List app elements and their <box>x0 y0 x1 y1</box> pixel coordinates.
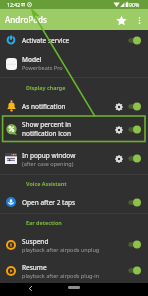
button[interactable]: Toggle <box>128 154 141 163</box>
button[interactable]: Toggle <box>128 240 141 249</box>
button[interactable]: Favorite <box>111 10 131 30</box>
staticText: Suspend <box>22 237 49 246</box>
button[interactable]: Model <box>0 50 148 77</box>
button[interactable]: Resume <box>0 258 148 283</box>
staticText: notification icon <box>22 129 72 138</box>
button[interactable]: Show percent in <box>0 115 148 143</box>
staticText: 12:42 <box>7 1 21 8</box>
staticText: Display charge <box>26 84 66 91</box>
staticText: Activate service <box>22 36 70 45</box>
button[interactable]: As notification <box>0 97 148 115</box>
button[interactable]: Settings <box>111 122 126 137</box>
button[interactable]: Suspend <box>0 231 148 258</box>
staticText: 90% <box>129 1 140 8</box>
staticText: Ear detection <box>26 219 62 226</box>
staticText: (after case opening) <box>22 160 74 167</box>
staticText: Resume <box>22 263 47 272</box>
button[interactable]: Activate service <box>0 30 148 50</box>
button[interactable]: In popup window <box>0 143 148 174</box>
staticText: Voice Assistant <box>26 180 67 187</box>
button[interactable]: Toggle <box>128 266 141 275</box>
button[interactable]: Toggle <box>128 198 141 207</box>
button[interactable]: Home <box>68 286 80 289</box>
button[interactable]: Toggle <box>128 125 141 134</box>
button[interactable]: Toggle <box>128 36 141 45</box>
button[interactable]: Settings <box>111 99 126 114</box>
button[interactable]: Toggle <box>128 102 141 111</box>
button[interactable]: Back <box>25 283 36 294</box>
staticText: In popup window <box>22 151 76 160</box>
staticText: playback after airpods plug-in <box>22 272 100 279</box>
staticText: Powerbeats Pro <box>22 64 63 71</box>
staticText: Show percent in <box>22 120 71 129</box>
button[interactable]: More options <box>131 12 147 28</box>
button[interactable]: Settings <box>111 151 126 166</box>
staticText: AndroPods <box>5 14 47 25</box>
staticText: As notification <box>22 102 66 111</box>
button[interactable]: Open after 2 taps <box>0 191 148 213</box>
staticText: Model <box>22 55 42 64</box>
staticText: Open after 2 taps <box>22 198 76 207</box>
staticText: playback after airpods unplug <box>22 246 100 253</box>
